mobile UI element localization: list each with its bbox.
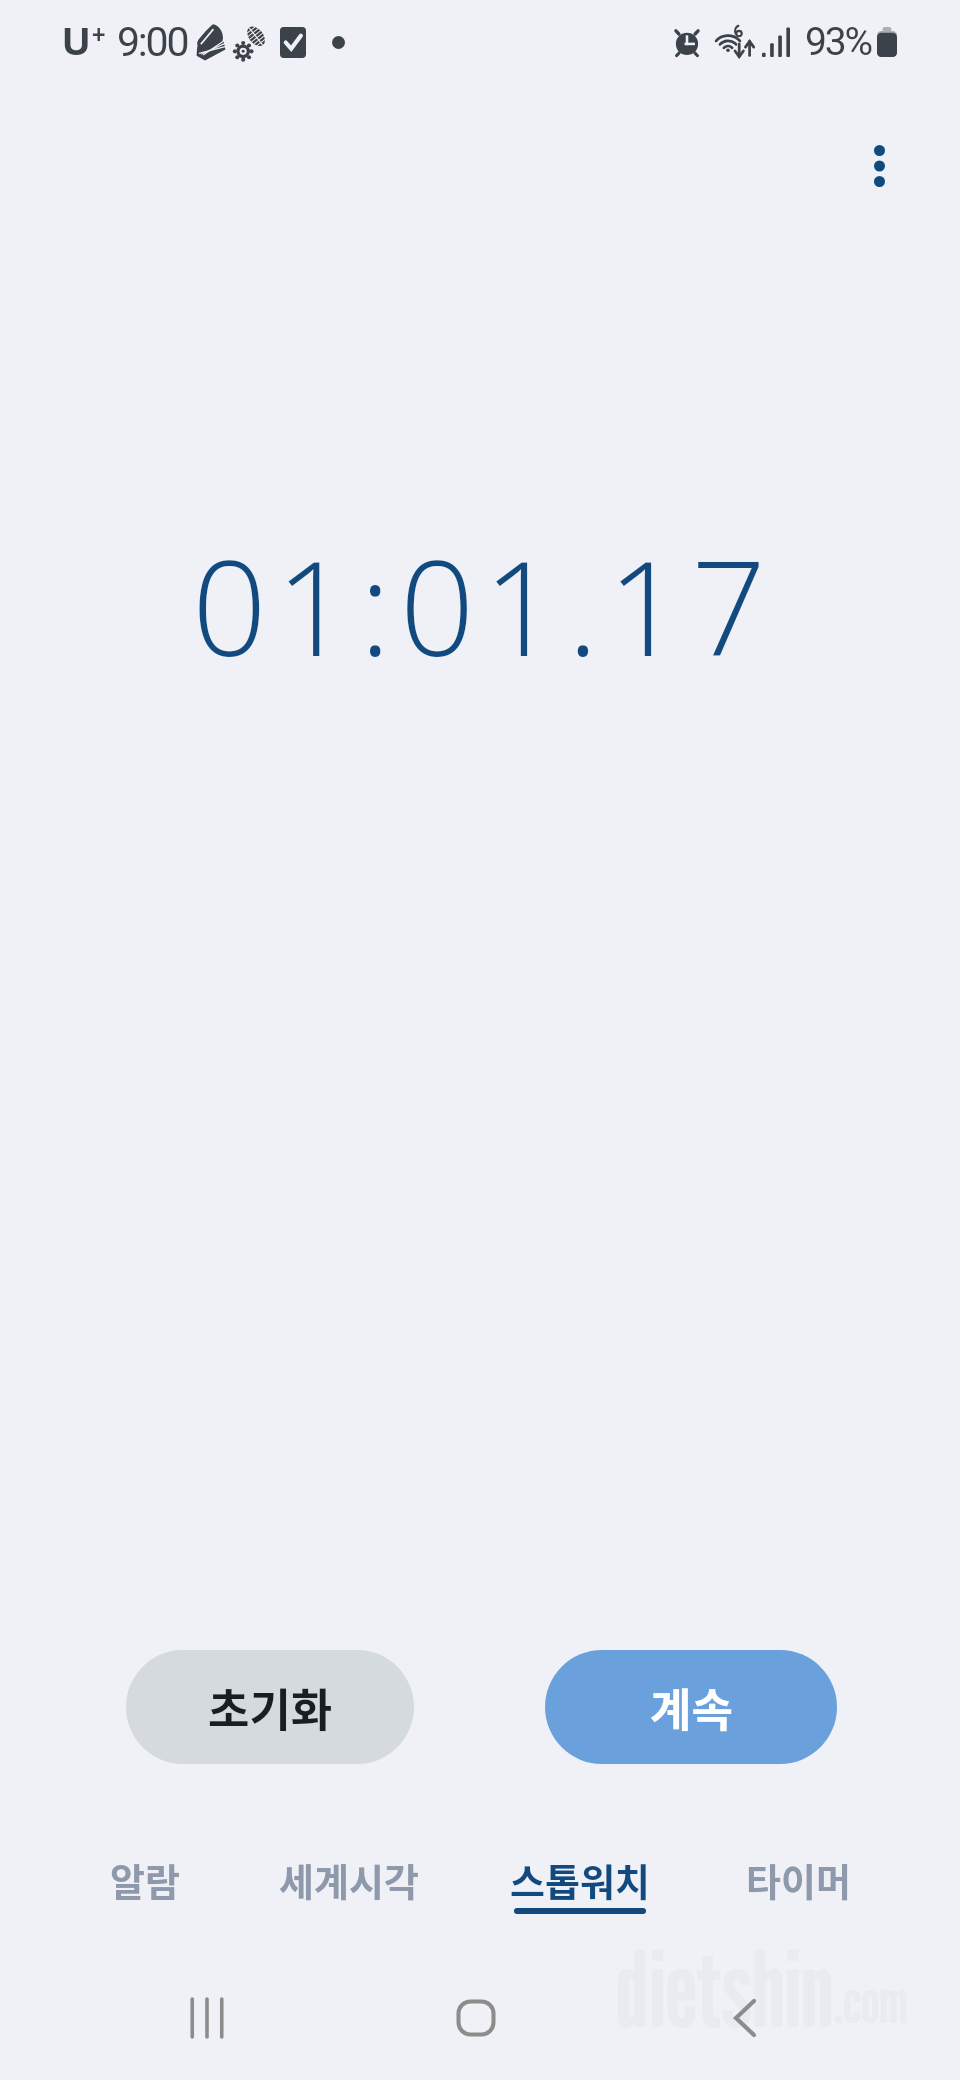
button[interactable]: 스톱워치 — [465, 1836, 695, 1932]
staticText: 93% — [805, 19, 871, 65]
staticText: 세계시각 — [279, 1852, 419, 1907]
staticText: 초기화 — [208, 1675, 333, 1740]
staticText: 스톱워치 — [510, 1852, 650, 1907]
button[interactable]: 계속 — [545, 1650, 837, 1764]
staticText: U — [62, 22, 91, 63]
button[interactable]: 세계시각 — [236, 1836, 461, 1932]
staticText: 01:01.17 — [192, 516, 776, 694]
button[interactable]: 타이머 — [686, 1836, 911, 1932]
button[interactable]: 알람 — [40, 1836, 250, 1932]
staticText: 9:00 — [117, 18, 188, 66]
button[interactable]: 초기화 — [126, 1650, 414, 1764]
staticText: dietshin — [616, 1926, 834, 2051]
button[interactable]: Recents — [183, 1994, 231, 2042]
staticText: 계속 — [650, 1675, 733, 1740]
staticText: + — [91, 20, 107, 46]
staticText: 타이머 — [746, 1852, 851, 1907]
button[interactable]: Home — [452, 1994, 500, 2042]
button[interactable]: More options — [847, 134, 911, 198]
button[interactable]: Back — [721, 1994, 769, 2042]
staticText: 알람 — [110, 1852, 180, 1907]
